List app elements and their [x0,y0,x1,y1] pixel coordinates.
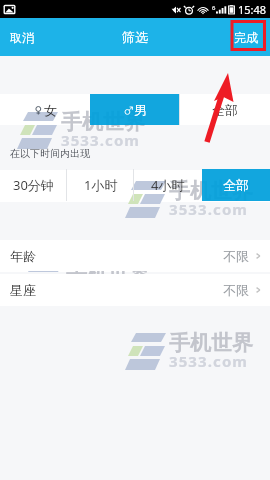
staticText: 手机世界 [169,330,253,356]
staticText: 在以下时间内出现 [10,147,90,160]
staticText: 全部 [212,102,238,118]
staticText: 4小时 [151,176,185,194]
button[interactable]: 全部 [180,94,270,125]
staticText: 男 [134,102,147,118]
button[interactable]: 年龄 [0,240,270,271]
button[interactable]: 星座 [0,274,270,305]
staticText: 全部 [223,177,249,193]
staticText: 15:48 [238,2,267,17]
staticText: 6 [212,4,216,12]
staticText: 不限 [223,248,249,264]
staticText: 1小时 [84,176,118,194]
staticText: 年龄 [10,248,36,264]
button[interactable]: 完成 [222,18,270,56]
staticText: 手机世界 [66,260,150,286]
button[interactable]: 全部 [202,169,270,201]
staticText: 3533.com [61,130,141,150]
staticText: 30分钟 [13,176,54,194]
button[interactable]: 1小时 [67,169,134,201]
button[interactable]: 男 [90,94,180,125]
staticText: 3533.com [169,199,249,219]
button[interactable]: 30分钟 [0,169,67,201]
staticText: 手机世界 [61,109,145,135]
staticText: 女 [44,102,57,118]
staticText: 取消 [10,30,34,45]
staticText: 手机世界 [169,178,253,204]
button[interactable]: 取消 [0,18,44,56]
staticText: 完成 [234,30,258,45]
button[interactable]: 女 [0,94,90,125]
button[interactable]: 4小时 [134,169,202,201]
staticText: 星座 [10,282,36,298]
staticText: 不限 [223,282,249,298]
staticText: 筛选 [122,29,148,45]
staticText: 3533.com [169,351,249,371]
